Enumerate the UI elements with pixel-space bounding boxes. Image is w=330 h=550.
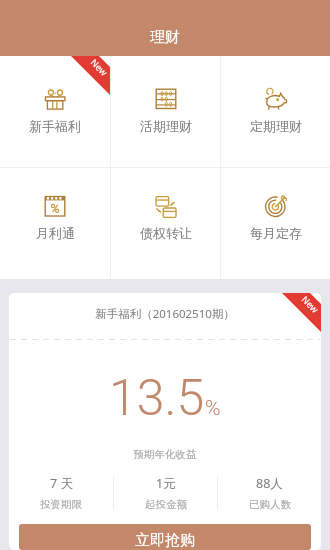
- staticText: %: [205, 396, 221, 421]
- button[interactable]: 定期理财: [221, 56, 330, 167]
- staticText: New: [88, 56, 110, 78]
- staticText: 每月定存: [250, 225, 302, 241]
- staticText: 新手福利: [29, 118, 81, 134]
- staticText: 债权转让: [140, 225, 192, 241]
- staticText: 投资期限: [40, 498, 82, 510]
- staticText: 起投金额: [145, 498, 187, 510]
- staticText: 月利通: [36, 225, 75, 241]
- button[interactable]: 债权转让: [111, 168, 220, 279]
- staticText: 活期理财: [140, 118, 192, 134]
- staticText: 7 天: [50, 475, 73, 492]
- staticText: 已购人数: [249, 498, 291, 510]
- staticText: 理财: [150, 28, 180, 47]
- button[interactable]: 活期理财: [111, 56, 220, 167]
- staticText: 1元: [156, 475, 176, 492]
- staticText: 新手福利（201602510期）: [9, 306, 321, 322]
- button[interactable]: 月利通: [0, 168, 110, 279]
- button[interactable]: 新手福利: [0, 56, 110, 167]
- button[interactable]: 新手福利（201602510期）: [9, 293, 321, 550]
- button[interactable]: 每月定存: [221, 168, 330, 279]
- staticText: New: [299, 293, 321, 315]
- staticText: 88人: [256, 475, 283, 492]
- staticText: 立即抢购: [135, 531, 195, 550]
- staticText: 预期年化收益: [9, 448, 321, 461]
- staticText: 定期理财: [250, 118, 302, 134]
- button[interactable]: 立即抢购: [19, 524, 311, 550]
- staticText: 13.5: [109, 369, 205, 428]
